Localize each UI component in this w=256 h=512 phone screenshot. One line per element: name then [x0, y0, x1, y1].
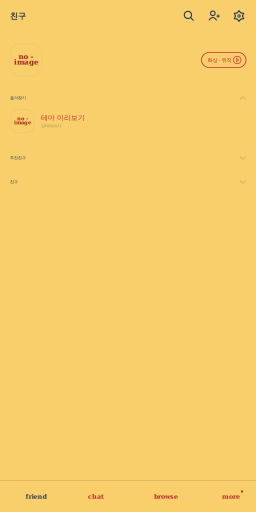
staticText: image	[14, 58, 38, 66]
button[interactable]: Settings	[233, 10, 245, 22]
button[interactable]: browse	[128, 481, 192, 512]
staticText: 테마 미리보기	[41, 114, 85, 122]
button[interactable]: 추천친구	[0, 134, 256, 182]
staticText: 화상 - 뮤직	[207, 56, 231, 64]
button[interactable]: chat	[64, 481, 128, 512]
button[interactable]: Add friend	[208, 10, 220, 22]
staticText: 상태메세지	[41, 123, 61, 128]
staticText: no -	[17, 116, 28, 121]
button[interactable]: no -	[0, 108, 256, 134]
staticText: 친구	[10, 179, 18, 184]
staticText: no -	[18, 52, 33, 61]
button[interactable]: more	[192, 481, 256, 512]
staticText: more	[222, 493, 240, 500]
staticText: chat	[88, 493, 104, 500]
staticText: 즐겨찾기	[10, 95, 26, 100]
staticText: 추천친구	[10, 155, 26, 160]
staticText: friend	[25, 493, 46, 500]
staticText: browse	[154, 493, 178, 500]
staticText: 친구	[10, 11, 26, 21]
staticText: image	[14, 120, 31, 125]
button[interactable]: 즐겨찾기	[0, 88, 256, 108]
button[interactable]: no -	[0, 32, 256, 88]
button[interactable]: friend	[0, 481, 64, 512]
button[interactable]: Search	[183, 10, 195, 22]
